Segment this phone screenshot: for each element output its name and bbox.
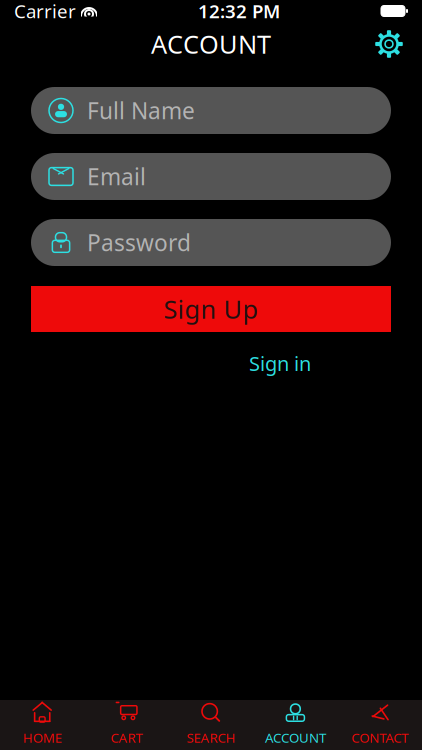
button[interactable]: HOME (0, 696, 84, 750)
staticText: Full Name (87, 95, 195, 125)
staticText: HOME (23, 729, 62, 746)
button[interactable]: ACCOUNT (253, 696, 338, 750)
button[interactable]: Sign Up (31, 286, 391, 332)
staticText: SEARCH (186, 729, 235, 746)
button[interactable]: Email (31, 153, 391, 200)
staticText: ACCOUNT (265, 729, 326, 746)
button[interactable]: Sign in (249, 344, 311, 383)
staticText: Email (87, 161, 146, 191)
staticText: Password (87, 227, 191, 257)
button[interactable]: Settings (368, 23, 410, 65)
staticText: Sign Up (163, 292, 258, 326)
staticText: ACCOUNT (151, 27, 271, 61)
staticText: 12:32 PM (198, 0, 280, 23)
staticText: CONTACT (351, 729, 408, 746)
button[interactable]: CART (84, 696, 169, 750)
button[interactable]: SEARCH (169, 696, 253, 750)
staticText: CART (111, 729, 143, 746)
button[interactable]: Password (31, 219, 391, 266)
button[interactable]: Full Name (31, 87, 391, 134)
button[interactable]: CONTACT (338, 696, 422, 750)
staticText: Carrier (14, 0, 76, 23)
staticText: Sign in (249, 350, 311, 377)
